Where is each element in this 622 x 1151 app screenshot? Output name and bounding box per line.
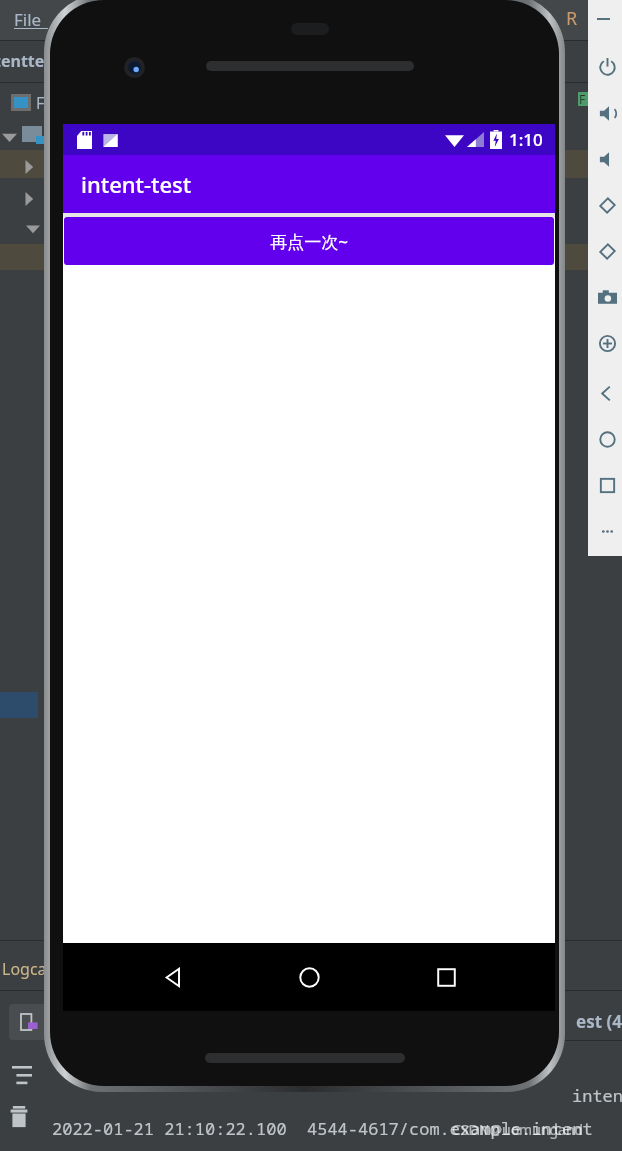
button[interactable]: Volume up: [592, 98, 622, 128]
staticText: intent: [572, 1084, 622, 1107]
button[interactable]: More: [592, 516, 622, 546]
button[interactable]: Home: [282, 950, 336, 1004]
staticText: R: [566, 6, 578, 31]
staticText: CSDN@uomungand: [452, 1120, 584, 1139]
staticText: 再点一次~: [270, 230, 348, 253]
staticText: File: [14, 8, 42, 31]
button[interactable]: Screenshot: [592, 282, 622, 312]
button[interactable]: Back: [146, 950, 200, 1004]
button[interactable]: 再点一次~: [64, 217, 554, 265]
staticText: 1:10: [509, 128, 543, 151]
button[interactable]: Power: [592, 52, 622, 82]
staticText: Logcat: [2, 958, 53, 980]
staticText: 2022-01-21 21:10:22.100 4544-4617/com.ex…: [52, 1117, 593, 1140]
button[interactable]: Recent apps: [419, 950, 473, 1004]
button[interactable]: Rotate left: [592, 190, 622, 220]
staticText: intent-test: [81, 169, 192, 199]
staticText: tenttest: [0, 50, 60, 72]
button[interactable]: Overview: [592, 470, 622, 500]
button[interactable]: Zoom: [592, 328, 622, 358]
staticText: est (4: [576, 1010, 622, 1033]
button[interactable]: Home: [592, 424, 622, 454]
button[interactable]: Rotate right: [592, 236, 622, 266]
staticText: F: [36, 92, 45, 114]
button[interactable]: [9, 1004, 49, 1040]
staticText: F: [579, 91, 586, 107]
button[interactable]: Volume down: [592, 144, 622, 174]
button[interactable]: Back: [592, 378, 622, 408]
